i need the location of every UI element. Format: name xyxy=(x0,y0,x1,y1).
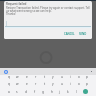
button[interactable]: j xyxy=(59,90,60,94)
button[interactable]: u xyxy=(61,82,63,86)
button[interactable]: o xyxy=(78,82,80,86)
button[interactable]: y xyxy=(52,75,54,79)
staticText: w xyxy=(16,82,19,86)
staticText: q xyxy=(8,82,10,86)
staticText: f xyxy=(34,90,36,94)
staticText: y xyxy=(52,82,54,86)
staticText: w xyxy=(16,75,19,79)
staticText: t xyxy=(44,82,46,86)
staticText: o xyxy=(78,75,80,79)
staticText: g xyxy=(42,90,44,94)
button[interactable]: l xyxy=(76,90,77,94)
staticText: r xyxy=(35,82,37,86)
button[interactable]: i xyxy=(70,75,71,79)
button[interactable]: w xyxy=(16,82,19,86)
button[interactable]: r xyxy=(35,75,37,79)
button[interactable]: s xyxy=(16,90,18,94)
button[interactable]: t xyxy=(44,82,46,86)
staticText: t xyxy=(44,75,46,79)
button[interactable]: u xyxy=(61,75,63,79)
button[interactable]: g xyxy=(42,90,44,94)
staticText: q xyxy=(8,75,10,79)
staticText: a xyxy=(8,90,10,94)
button[interactable]: i xyxy=(70,82,71,86)
button[interactable]: a xyxy=(8,90,10,94)
button[interactable]: Google search xyxy=(4,70,8,74)
staticText: r xyxy=(35,75,37,79)
staticText: k xyxy=(67,90,69,94)
button[interactable]: d xyxy=(25,90,27,94)
staticText: Restore Transaction failed. Please try a… xyxy=(6,6,90,16)
button[interactable]: q xyxy=(8,75,10,79)
button[interactable]: o xyxy=(78,75,80,79)
staticText: h xyxy=(51,90,53,94)
button[interactable]: r xyxy=(35,82,37,86)
staticText: i xyxy=(70,75,71,79)
button[interactable]: p xyxy=(86,82,88,86)
button[interactable]: CANCEL xyxy=(62,31,77,37)
button[interactable]: h xyxy=(51,90,53,94)
staticText: y xyxy=(52,75,54,79)
staticText: o xyxy=(78,82,80,86)
staticText: u xyxy=(61,75,63,79)
staticText: Request failed xyxy=(6,2,27,6)
staticText: p xyxy=(86,75,88,79)
staticText: d xyxy=(25,90,27,94)
staticText: e xyxy=(26,75,28,79)
staticText: i xyxy=(70,82,71,86)
button[interactable]: e xyxy=(26,75,28,79)
staticText: p xyxy=(86,82,88,86)
button[interactable]: e xyxy=(26,82,28,86)
button[interactable]: q xyxy=(8,82,10,86)
button[interactable]: k xyxy=(67,90,69,94)
staticText: SEND xyxy=(79,32,87,36)
button[interactable] xyxy=(5,19,91,28)
staticText: e xyxy=(26,82,28,86)
staticText: CANCEL xyxy=(64,32,75,36)
staticText: j xyxy=(59,90,60,94)
button[interactable]: Enter xyxy=(83,89,88,94)
staticText: s xyxy=(16,90,18,94)
staticText: u xyxy=(61,82,63,86)
button[interactable]: SEND xyxy=(77,31,89,37)
staticText: l xyxy=(76,90,77,94)
button[interactable]: p xyxy=(86,75,88,79)
button[interactable]: f xyxy=(34,90,36,94)
button[interactable]: t xyxy=(44,75,46,79)
button[interactable]: w xyxy=(16,75,19,79)
button[interactable]: y xyxy=(52,82,54,86)
